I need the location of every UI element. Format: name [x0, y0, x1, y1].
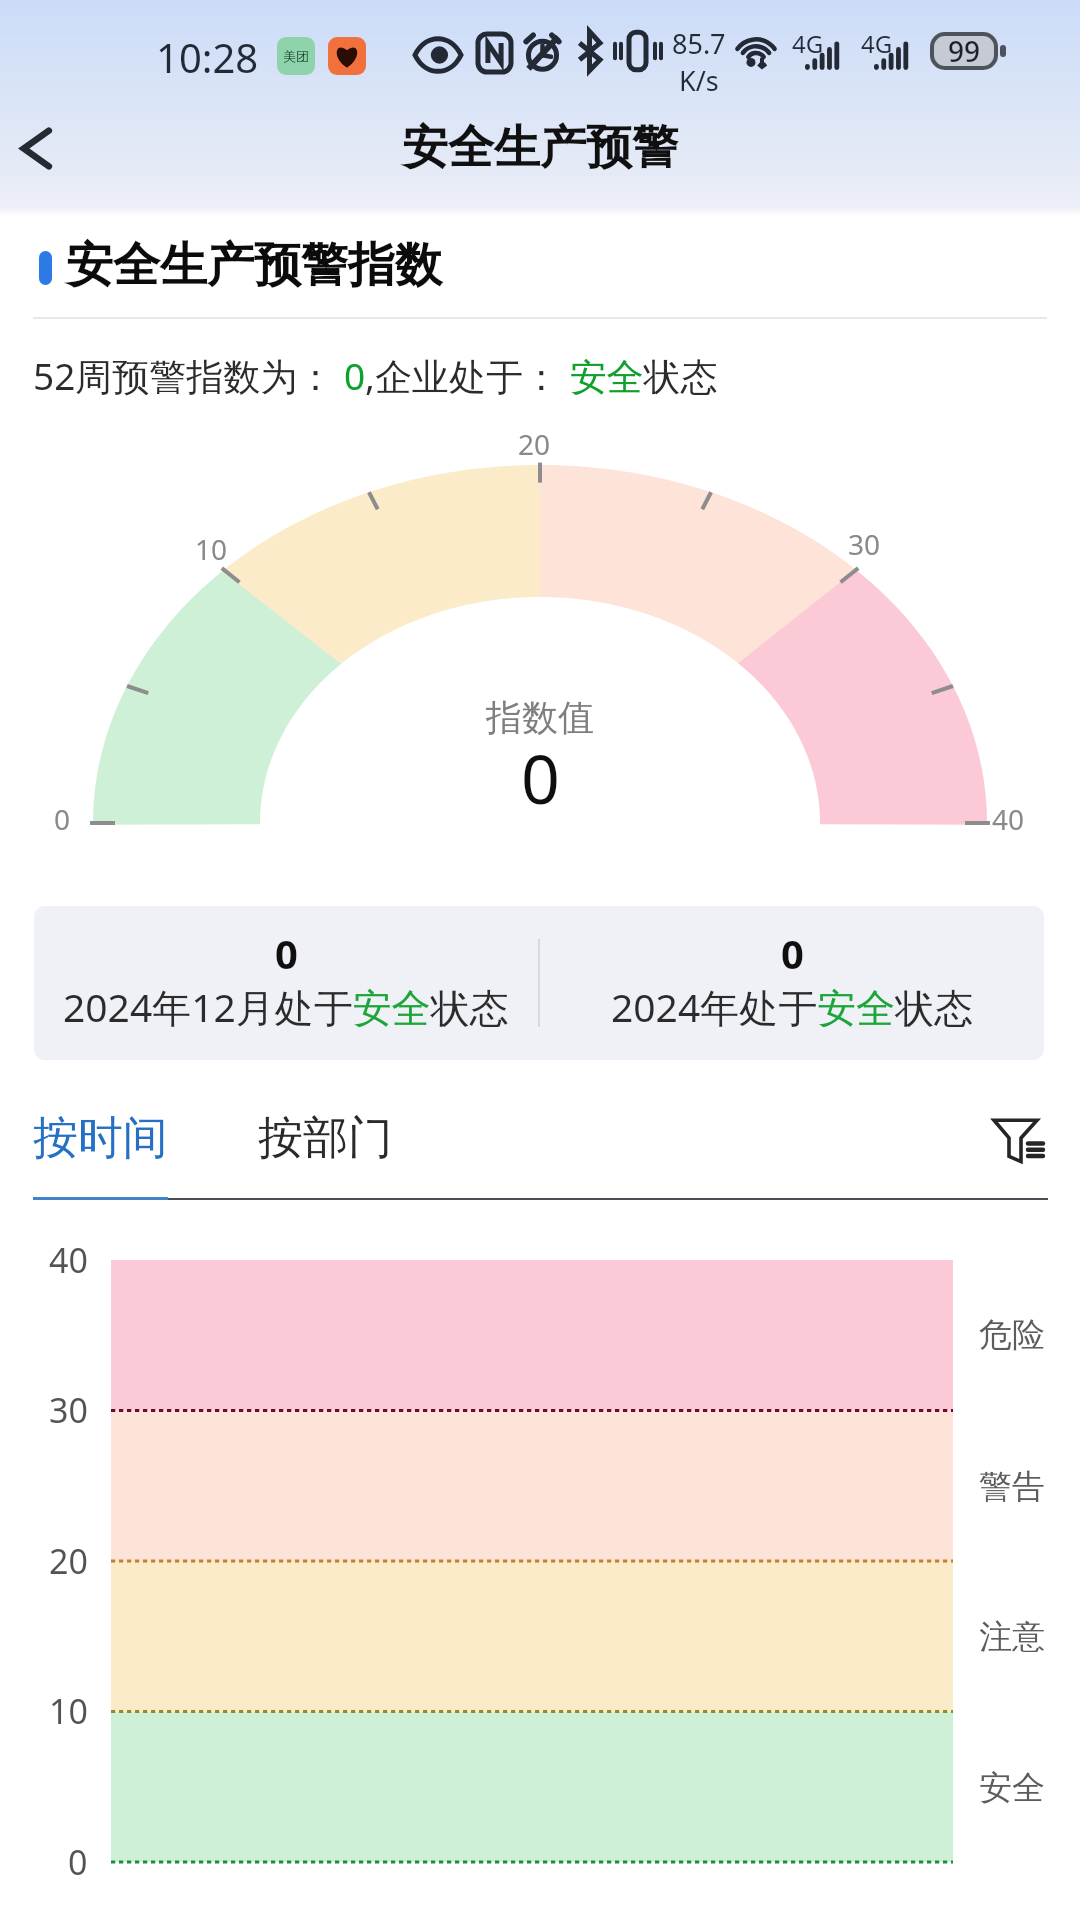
staticText: 85.7 — [672, 25, 726, 62]
button[interactable]: 按时间 — [18, 1090, 183, 1187]
staticText: 注意 — [979, 1616, 1045, 1658]
staticText: 警告 — [979, 1466, 1045, 1508]
staticText: K/s — [679, 62, 719, 99]
staticText: 0 — [781, 926, 804, 980]
staticText: 4G — [861, 27, 893, 60]
staticText: 按部门 — [258, 1110, 393, 1167]
staticText: 指数值 — [486, 695, 594, 740]
staticText: 4G — [792, 27, 824, 60]
staticText: 0 — [521, 731, 560, 824]
staticText: 0 — [275, 926, 298, 980]
staticText: 52周预警指数为： 0,企业处于： 安全状态 — [33, 350, 718, 401]
staticText: 美团 — [283, 48, 309, 64]
staticText: 安全 — [979, 1767, 1045, 1809]
staticText: 10:28 — [156, 30, 259, 84]
button[interactable]: Filter — [978, 1100, 1058, 1180]
staticText: 20 — [518, 425, 551, 463]
staticText: 10 — [49, 1688, 88, 1734]
staticText: 30 — [848, 525, 881, 563]
staticText: 20 — [49, 1538, 88, 1584]
staticText: 0 — [68, 1839, 88, 1885]
staticText: 按时间 — [33, 1110, 168, 1167]
staticText: 40 — [49, 1237, 88, 1283]
button[interactable]: Back — [0, 102, 82, 194]
staticText: 99 — [948, 32, 981, 70]
staticText: 0 — [54, 800, 71, 838]
staticText: 2024年处于安全状态 — [611, 980, 974, 1033]
staticText: 30 — [49, 1387, 88, 1433]
staticText: 40 — [992, 800, 1025, 838]
staticText: 危险 — [979, 1314, 1045, 1356]
staticText: 2024年12月处于安全状态 — [63, 980, 509, 1033]
staticText: 安全生产预警指数 — [66, 236, 442, 295]
staticText: 安全生产预警 — [402, 119, 678, 177]
button[interactable]: 按部门 — [243, 1090, 408, 1187]
staticText: 10 — [195, 530, 228, 568]
